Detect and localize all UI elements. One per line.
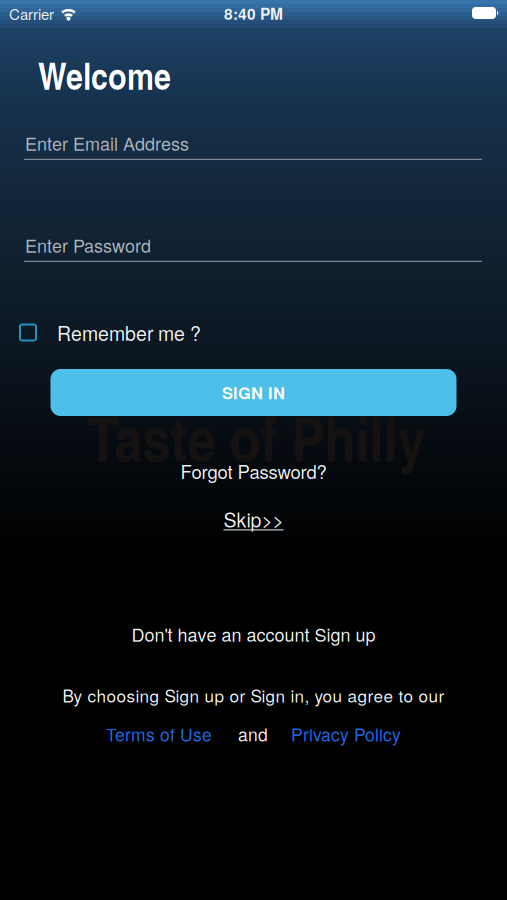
staticText: Forgot Password?	[180, 458, 326, 484]
button[interactable]: Privacy Policy	[291, 721, 401, 747]
staticText: Enter Password	[25, 232, 151, 258]
staticText: 8:40 PM	[224, 2, 283, 25]
staticText: Terms of Use	[106, 721, 212, 747]
staticText: Enter Email Address	[25, 130, 189, 156]
staticText: Carrier	[9, 3, 54, 24]
button[interactable]: Remember me ?	[0, 318, 507, 346]
staticText: Welcome	[38, 49, 171, 101]
staticText: Privacy Policy	[291, 721, 401, 747]
button[interactable]: Terms of Use	[106, 721, 212, 747]
button[interactable]: Enter Email Address	[0, 130, 507, 160]
staticText: By choosing Sign up or Sign in, you agre…	[62, 683, 444, 707]
staticText: Skip>>	[223, 505, 283, 533]
button[interactable]: Forgot Password?	[180, 458, 326, 484]
staticText: Remember me ?	[57, 318, 201, 346]
staticText: and	[238, 721, 268, 747]
staticText: SIGN IN	[222, 381, 285, 404]
button[interactable]: SIGN IN	[50, 369, 456, 416]
button[interactable]: Don't have an account Sign up	[131, 621, 375, 647]
staticText: Taste of Philly	[87, 394, 425, 480]
button[interactable]: Enter Password	[0, 232, 507, 262]
staticText: Don't have an account Sign up	[131, 621, 375, 647]
button[interactable]: Skip>>	[223, 505, 283, 533]
